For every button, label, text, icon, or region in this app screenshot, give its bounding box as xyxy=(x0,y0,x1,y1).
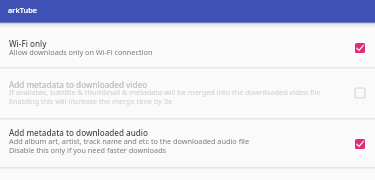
button[interactable]: Wi-Fi only xyxy=(0,27,375,67)
staticText: Disable this only if you need faster dow… xyxy=(9,145,167,155)
button[interactable]: arkTube xyxy=(0,0,375,22)
staticText: Wi-Fi only xyxy=(9,38,47,49)
staticText: Add metadata to downloaded video xyxy=(9,79,148,90)
button[interactable]: Add metadata to downloaded video, not ch… xyxy=(344,69,375,119)
button[interactable]: Wi-Fi only, checked xyxy=(344,27,375,67)
button[interactable]: Add metadata to downloaded video xyxy=(0,69,375,119)
staticText: arkTube xyxy=(8,5,38,15)
staticText: Add metadata to downloaded audio xyxy=(9,127,148,138)
button[interactable]: Add metadata to downloaded audio xyxy=(0,120,375,168)
button[interactable]: Add metadata to downloaded audio, checke… xyxy=(344,120,375,168)
staticText: Enabling this will increase the merge ti… xyxy=(9,96,172,106)
staticText: Allow downloads only on Wi-Fi connection xyxy=(9,47,153,57)
staticText: If available, subtitle & thumbnail & met… xyxy=(9,87,321,97)
staticText: Add album art, artist, track name and et… xyxy=(9,136,250,146)
